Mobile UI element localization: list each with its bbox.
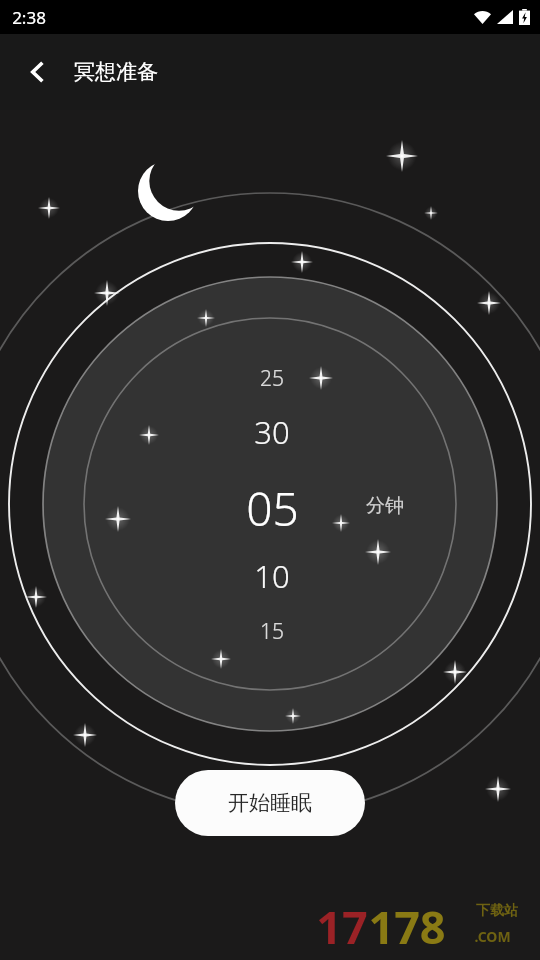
button[interactable]: 25 xyxy=(188,355,356,401)
staticText: 开始睡眠 xyxy=(228,790,312,816)
button[interactable]: 开始睡眠 xyxy=(175,770,365,836)
staticText: .COM xyxy=(474,927,511,946)
button[interactable]: Back xyxy=(14,48,62,96)
staticText: 05 xyxy=(246,477,299,540)
button[interactable]: 05 xyxy=(188,476,356,540)
staticText: 2:38 xyxy=(12,6,46,29)
staticText: 冥想准备 xyxy=(74,59,158,85)
button[interactable]: 15 xyxy=(188,608,356,654)
staticText: 下载站 xyxy=(476,902,518,920)
button[interactable]: 10 xyxy=(188,550,356,602)
staticText: 178 xyxy=(368,896,446,957)
staticText: 分钟 xyxy=(366,494,404,518)
button[interactable]: 30 xyxy=(188,406,356,458)
staticText: 30 xyxy=(254,411,290,453)
staticText: 10 xyxy=(254,555,290,597)
staticText: 17 xyxy=(316,896,368,957)
staticText: 25 xyxy=(260,364,284,393)
staticText: 15 xyxy=(260,617,284,646)
